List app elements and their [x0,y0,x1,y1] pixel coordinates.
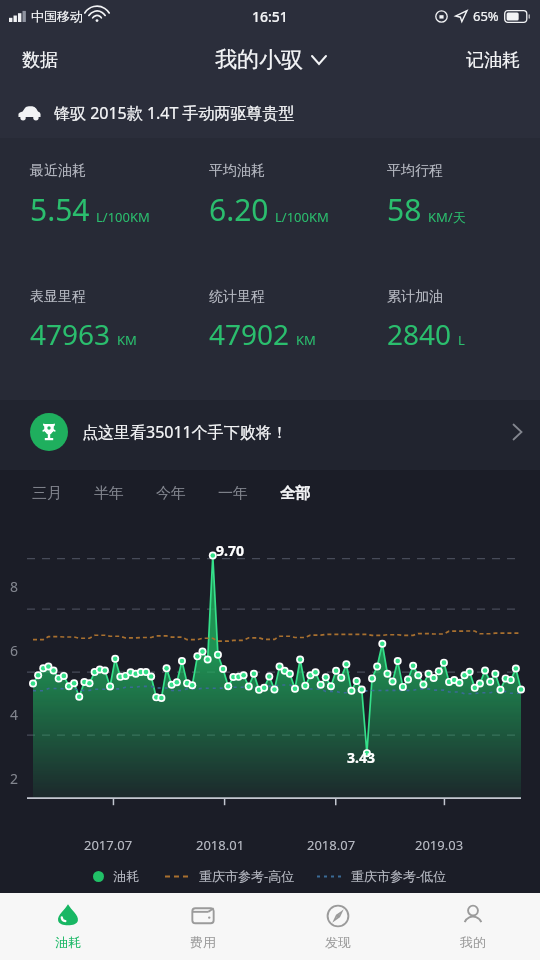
staticText: 重庆市参考-高位 [199,867,295,885]
staticText: 65% [473,7,499,25]
staticText: 累计加油 [387,288,443,306]
button[interactable]: 全部 [264,476,326,511]
staticText: 16:51 [252,7,288,26]
other: Car [18,106,41,121]
staticText: 油耗 [55,934,81,950]
staticText: L/100KM [96,208,150,226]
button[interactable]: 点这里看35011个手下败将！ [0,400,540,463]
staticText: 中国移动 [31,8,83,24]
staticText: 全部 [280,484,310,503]
staticText: 2017.07 [84,836,133,854]
button[interactable]: 三月 [16,476,78,511]
staticText: 9.70 [216,541,244,560]
button[interactable]: Car [0,88,540,138]
staticText: L [458,331,465,349]
button[interactable]: 数据 [0,32,80,88]
staticText: 重庆市参考-低位 [351,867,447,885]
staticText: 锋驭 2015款 1.4T 手动两驱尊贵型 [54,102,295,124]
button[interactable]: 我的 [405,893,540,960]
staticText: 我的 [460,934,486,950]
staticText: 我的小驭 [215,46,303,74]
staticText: 统计里程 [209,288,265,306]
staticText: 表显里程 [30,288,86,306]
staticText: 6.20 [209,189,269,230]
staticText: KM [117,331,137,349]
button[interactable]: 记油耗 [446,32,540,88]
staticText: 58 [387,189,422,230]
button[interactable]: 一年 [202,476,264,511]
staticText: KM/天 [428,208,466,226]
button[interactable]: 我的小驭 [205,40,336,80]
staticText: 费用 [190,934,216,950]
button[interactable]: 费用 [135,893,270,960]
button[interactable]: 发现 [270,893,405,960]
staticText: 最近油耗 [30,162,86,180]
staticText: 平均行程 [387,162,443,180]
button[interactable]: 半年 [78,476,140,511]
staticText: 半年 [94,484,124,503]
staticText: 三月 [32,484,62,503]
staticText: 2840 [387,315,452,353]
staticText: 记油耗 [466,49,520,72]
staticText: 47963 [30,315,111,353]
staticText: 今年 [156,484,186,503]
staticText: KM [296,331,316,349]
staticText: 一年 [218,484,248,503]
staticText: 2018.07 [307,836,356,854]
staticText: 发现 [325,934,351,950]
button[interactable]: 油耗 [0,893,135,960]
staticText: L/100KM [275,208,329,226]
staticText: 2018.01 [196,836,245,854]
staticText: 5.54 [30,189,90,230]
button[interactable]: 今年 [140,476,202,511]
staticText: 点这里看35011个手下败将！ [82,421,513,443]
staticText: 数据 [22,49,58,72]
staticText: 2019.03 [415,836,464,854]
staticText: 47902 [209,315,290,353]
staticText: 平均油耗 [209,162,265,180]
staticText: 3.43 [347,748,375,767]
staticText: 油耗 [113,868,139,884]
